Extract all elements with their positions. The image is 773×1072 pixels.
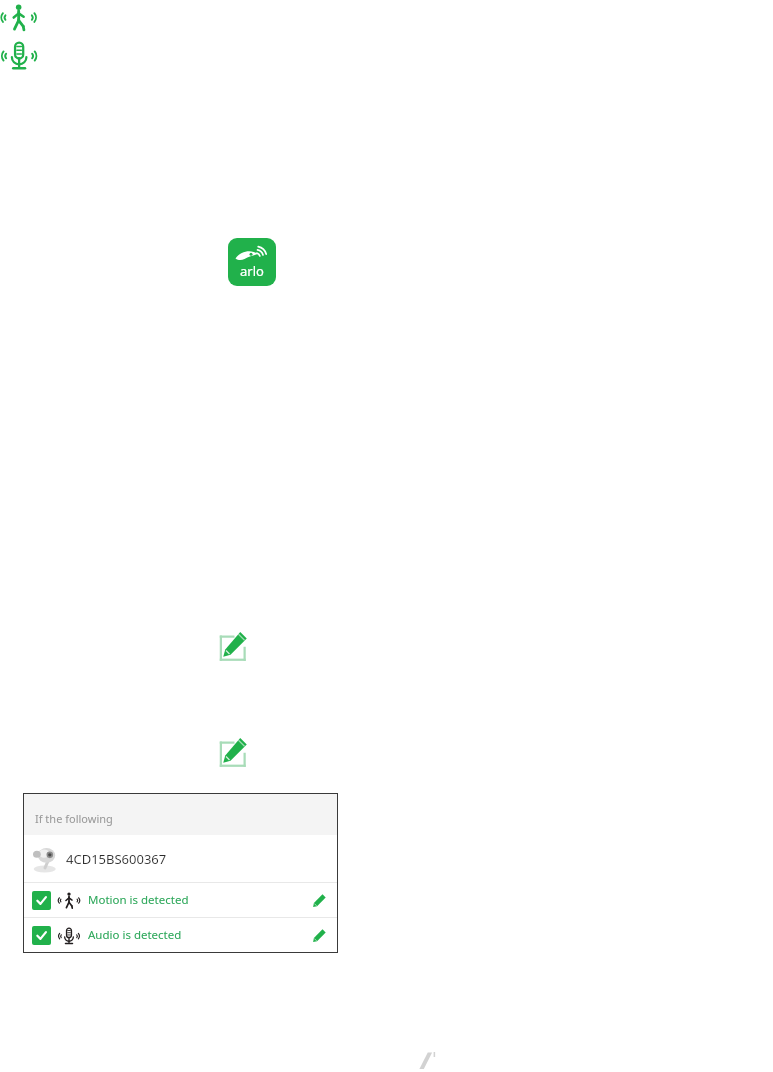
staticText: 4CD15BS600367 xyxy=(66,850,167,868)
staticText: Motion is detected xyxy=(88,892,189,908)
button[interactable]: Enabled xyxy=(23,883,338,917)
button[interactable]: 4CD15BS600367 xyxy=(23,835,338,882)
button[interactable]: Edit Motion is detected xyxy=(304,885,334,915)
staticText: Audio is detected xyxy=(88,927,182,943)
staticText: If the following xyxy=(35,811,113,826)
button[interactable]: Edit rule xyxy=(219,737,249,767)
button[interactable]: Enabled xyxy=(23,918,338,952)
button[interactable]: Enabled xyxy=(32,891,51,910)
button[interactable]: Arlo xyxy=(228,238,276,286)
button[interactable]: Edit Audio is detected xyxy=(304,920,334,950)
button[interactable]: Motion detected xyxy=(1,1,35,33)
button[interactable]: Edit xyxy=(219,631,249,661)
button[interactable]: Enabled xyxy=(32,926,51,945)
button[interactable]: Audio detected xyxy=(1,39,35,73)
staticText: arlo xyxy=(228,262,276,280)
